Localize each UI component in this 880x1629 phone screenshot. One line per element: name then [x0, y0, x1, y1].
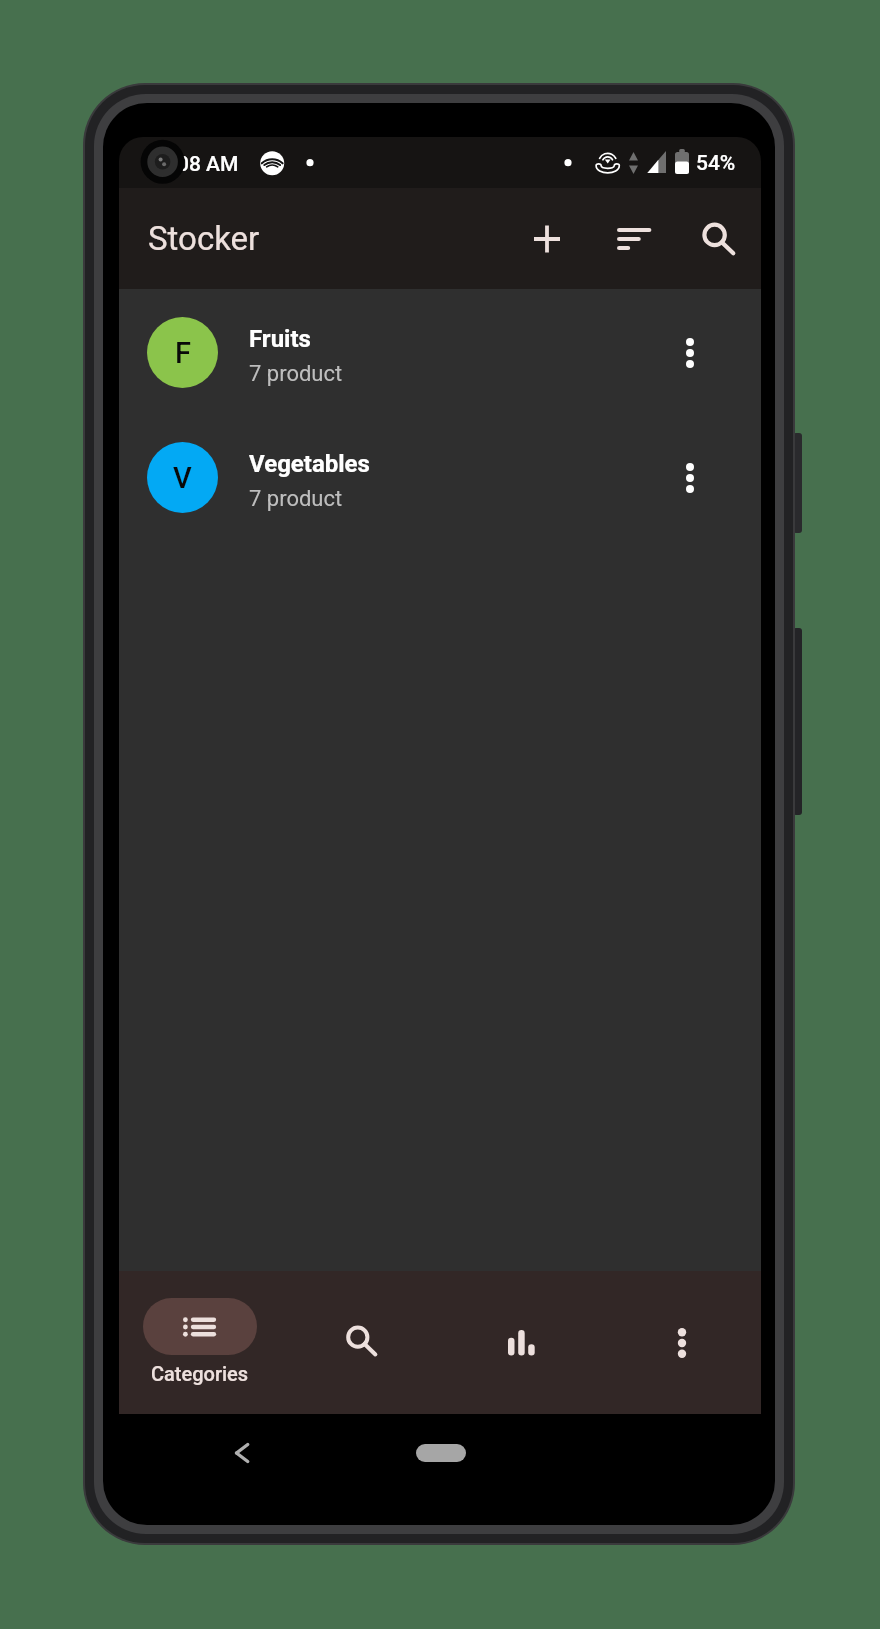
button[interactable]: Sort: [607, 211, 663, 267]
staticText: 7 product: [249, 361, 343, 387]
staticText: Fruits: [249, 325, 311, 353]
staticText: Categories: [151, 1362, 249, 1385]
button[interactable]: More: [602, 1271, 761, 1414]
button[interactable]: Add category: [519, 211, 575, 267]
button[interactable]: Statistics: [441, 1271, 602, 1414]
button[interactable]: Back: [214, 1425, 270, 1481]
staticText: 7 product: [249, 486, 343, 512]
button[interactable]: Search: [280, 1271, 441, 1414]
button[interactable]: More options: [662, 450, 718, 506]
staticText: F: [175, 336, 191, 370]
button[interactable]: Search: [690, 211, 746, 267]
staticText: 54%: [696, 151, 736, 176]
button[interactable]: More options: [662, 325, 718, 381]
button[interactable]: Categories: [119, 1271, 280, 1414]
staticText: Vegetables: [249, 450, 370, 478]
button[interactable]: F: [119, 303, 761, 402]
staticText: 08 AM: [177, 152, 239, 177]
staticText: Stocker: [148, 219, 260, 258]
button[interactable]: V: [119, 428, 761, 527]
staticText: V: [173, 461, 192, 495]
